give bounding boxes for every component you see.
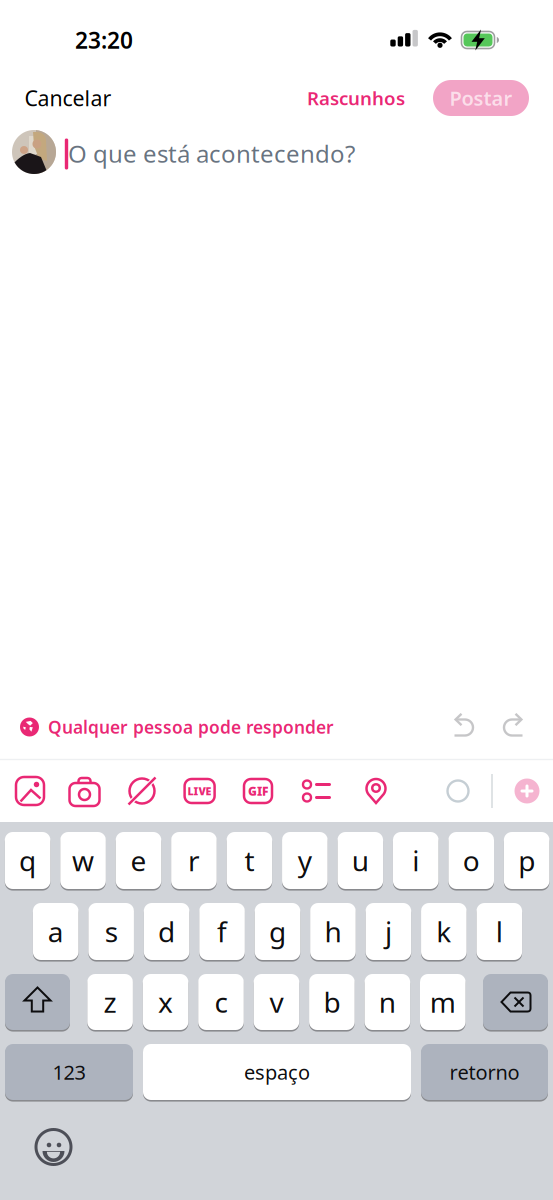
- button[interactable]: Apagar: [483, 973, 548, 1031]
- button[interactable]: Desfazer: [447, 710, 481, 744]
- button[interactable]: GIF: [236, 766, 280, 816]
- staticText: u: [352, 842, 369, 879]
- button[interactable]: Rascunhos: [307, 86, 405, 110]
- staticText: Cancelar: [24, 84, 111, 112]
- button[interactable]: n: [365, 973, 410, 1031]
- staticText: z: [104, 983, 117, 1021]
- button[interactable]: h: [310, 902, 356, 961]
- staticText: q: [19, 842, 36, 879]
- button[interactable]: w: [60, 831, 106, 890]
- staticText: Postar: [449, 85, 512, 111]
- button[interactable]: m: [420, 973, 466, 1031]
- button[interactable]: 123: [5, 1043, 133, 1101]
- staticText: 123: [52, 1059, 85, 1085]
- button[interactable]: t: [227, 831, 272, 890]
- staticText: g: [269, 913, 286, 950]
- button[interactable]: Cancelar: [24, 84, 111, 112]
- button[interactable]: v: [254, 973, 299, 1031]
- button[interactable]: Postar: [433, 80, 529, 116]
- staticText: w: [72, 842, 94, 879]
- button[interactable]: k: [421, 902, 467, 961]
- staticText: o: [463, 842, 480, 879]
- staticText: h: [324, 913, 341, 950]
- button[interactable]: s: [88, 902, 134, 961]
- button[interactable]: y: [282, 831, 328, 890]
- staticText: p: [518, 842, 535, 879]
- button[interactable]: espaço: [143, 1043, 411, 1101]
- staticText: espaço: [244, 1059, 310, 1085]
- button[interactable]: l: [476, 902, 522, 961]
- button[interactable]: Fotos: [8, 766, 52, 816]
- staticText: a: [48, 913, 64, 950]
- button[interactable]: o: [448, 831, 494, 890]
- button[interactable]: a: [33, 902, 78, 961]
- staticText: GIF: [248, 783, 268, 799]
- staticText: retorno: [449, 1059, 519, 1085]
- button[interactable]: Adicionar: [510, 771, 544, 811]
- button[interactable]: Emoji: [35, 1129, 71, 1165]
- button[interactable]: g: [255, 902, 300, 961]
- staticText: t: [244, 842, 254, 879]
- button[interactable]: Transmissão ao vivo: [178, 766, 222, 816]
- staticText: k: [436, 913, 451, 950]
- staticText: d: [158, 913, 175, 950]
- staticText: v: [269, 983, 283, 1021]
- button[interactable]: retorno: [421, 1043, 548, 1101]
- button[interactable]: c: [198, 973, 244, 1031]
- staticText: x: [158, 983, 173, 1021]
- button[interactable]: q: [5, 831, 50, 890]
- button[interactable]: b: [309, 973, 355, 1031]
- staticText: Rascunhos: [307, 86, 405, 110]
- staticText: r: [188, 842, 200, 879]
- button[interactable]: d: [144, 902, 189, 961]
- staticText: i: [412, 842, 419, 879]
- button[interactable]: r: [171, 831, 217, 890]
- button[interactable]: Refazer: [496, 710, 530, 744]
- staticText: n: [379, 983, 396, 1021]
- staticText: y: [298, 842, 312, 879]
- button[interactable]: e: [116, 831, 161, 890]
- staticText: 23:20: [75, 25, 133, 55]
- button[interactable]: Câmera: [62, 766, 106, 816]
- staticText: e: [130, 842, 146, 879]
- staticText: s: [105, 913, 118, 950]
- button[interactable]: u: [337, 831, 383, 890]
- button[interactable]: Localização: [354, 766, 398, 816]
- button[interactable]: Enquete: [295, 766, 339, 816]
- staticText: l: [496, 913, 503, 950]
- button[interactable]: p: [504, 831, 549, 890]
- button[interactable]: Grok: [120, 766, 164, 816]
- staticText: f: [217, 913, 227, 950]
- button[interactable]: j: [366, 902, 411, 961]
- staticText: c: [214, 983, 227, 1021]
- button[interactable]: Shift: [5, 973, 70, 1031]
- staticText: j: [385, 913, 392, 950]
- button[interactable]: i: [393, 831, 439, 890]
- button[interactable]: Qualquer pessoa pode responder: [20, 715, 334, 738]
- staticText: O que está acontecendo?: [68, 138, 355, 169]
- button[interactable]: f: [199, 902, 245, 961]
- button[interactable]: z: [87, 973, 133, 1031]
- staticText: b: [323, 983, 340, 1021]
- staticText: LIVE: [188, 784, 212, 798]
- staticText: m: [430, 983, 456, 1021]
- button[interactable]: x: [143, 973, 188, 1031]
- staticText: Qualquer pessoa pode responder: [48, 715, 334, 738]
